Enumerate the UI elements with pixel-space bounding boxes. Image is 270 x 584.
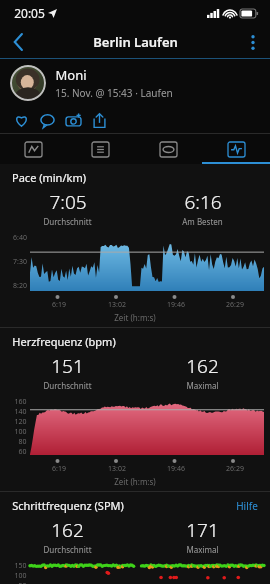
staticText: Durchschnitt — [43, 216, 92, 227]
staticText: Hilfe — [236, 499, 258, 513]
staticText: Herzfrequenz (bpm) — [12, 334, 116, 349]
button[interactable]: Laps — [134, 134, 202, 164]
staticText: 140 — [14, 407, 27, 417]
button[interactable]: Hilfe — [236, 499, 258, 513]
staticText: Maximal — [186, 544, 219, 555]
staticText: 6:19 — [52, 300, 66, 310]
button[interactable]: Splits — [67, 134, 134, 164]
staticText: 120 — [14, 417, 27, 427]
button[interactable]: More options — [236, 26, 270, 58]
staticText: 13:02 — [108, 464, 126, 474]
staticText: Moni — [55, 66, 87, 84]
staticText: 60 — [18, 447, 27, 455]
staticText: Durchschnitt — [43, 544, 92, 555]
staticText: 15. Nov. @ 15:43 · Laufen — [55, 86, 173, 100]
staticText: 7:30 — [13, 257, 27, 267]
staticText: Am Besten — [182, 216, 223, 227]
staticText: Schrittfrequenz (SPM) — [12, 498, 124, 513]
button[interactable]: Comment — [34, 108, 60, 132]
staticText: 26:29 — [226, 300, 244, 310]
button[interactable]: Photo — [60, 108, 86, 132]
button[interactable]: Map — [0, 134, 67, 164]
staticText: 13:02 — [108, 300, 126, 310]
button[interactable]: Back — [0, 26, 36, 58]
staticText: 150 — [14, 561, 27, 571]
button[interactable]: Charts — [202, 134, 270, 164]
staticText: 7:05 — [49, 189, 87, 215]
staticText: 6:40 — [13, 233, 27, 243]
button[interactable]: Like — [8, 108, 34, 132]
staticText: Berlin Laufen — [93, 33, 178, 51]
staticText: Zeit (h:m:s) — [114, 476, 156, 487]
staticText: 19:46 — [167, 300, 185, 310]
staticText: Zeit (h:m:s) — [114, 312, 156, 323]
staticText: 100 — [14, 571, 27, 581]
staticText: Pace (min/km) — [12, 170, 86, 185]
staticText: 100 — [14, 427, 27, 437]
staticText: 50 — [18, 581, 27, 584]
staticText: Maximal — [186, 380, 219, 391]
staticText: 20:05 — [14, 5, 45, 21]
staticText: 19:46 — [167, 464, 185, 474]
staticText: 6:16 — [184, 189, 222, 215]
staticText: 8:20 — [13, 281, 27, 291]
staticText: Durchschnitt — [43, 380, 92, 391]
staticText: 171 — [186, 517, 219, 543]
staticText: 160 — [14, 397, 27, 407]
button[interactable]: Moni — [0, 59, 270, 107]
button[interactable]: Share — [86, 108, 112, 132]
staticText: 162 — [51, 517, 84, 543]
staticText: 6:19 — [52, 464, 66, 474]
staticText: 80 — [18, 437, 27, 447]
staticText: 162 — [186, 353, 219, 379]
staticText: 151 — [51, 353, 84, 379]
staticText: 26:29 — [226, 464, 244, 474]
